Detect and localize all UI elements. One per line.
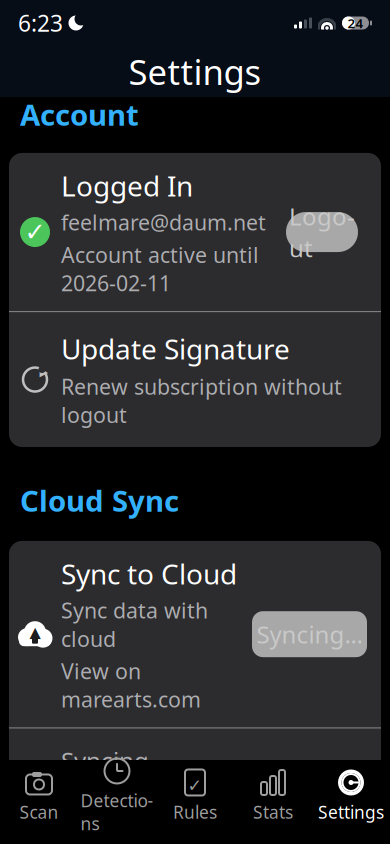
staticText: Syncing... (61, 744, 167, 776)
staticText: Settings (318, 800, 384, 823)
staticText: Sync data with cloud (61, 596, 208, 653)
staticText: Sync to Cloud (61, 555, 237, 592)
staticText: Renew subscription without logout (61, 372, 342, 429)
staticText: ▸ (39, 362, 48, 381)
button[interactable]: Detections (78, 769, 156, 823)
staticText: Logout (289, 200, 355, 264)
staticText: · (32, 776, 38, 806)
staticText: Scan (19, 800, 58, 823)
staticText: Account active until 2026-02-11 (61, 240, 259, 297)
button[interactable]: ▸ (9, 312, 381, 447)
staticText: Update Signature (61, 330, 290, 367)
staticText: Account (20, 95, 139, 134)
staticText: Stats (253, 800, 293, 823)
button[interactable]: Stats (234, 769, 312, 823)
staticText: 24 (347, 14, 363, 32)
staticText: Settings (128, 48, 261, 94)
staticText: ✓ (187, 776, 202, 795)
staticText: View on marearts.com (61, 657, 201, 713)
staticText: 6:23 (18, 8, 63, 38)
staticText: Cloud Sync (20, 481, 179, 520)
staticText: Detections (80, 789, 153, 835)
staticText: Rules (173, 800, 217, 823)
button[interactable]: ✓ (156, 769, 234, 823)
button[interactable]: Scan (0, 769, 78, 823)
button[interactable]: ▲ (9, 541, 381, 727)
staticText: Logged In (61, 167, 193, 204)
button[interactable]: Settings (312, 769, 390, 823)
staticText: Download (1/4): Downloading all rules fr… (61, 789, 359, 844)
staticText: ✓ (24, 218, 45, 246)
staticText: feelmare@daum.net (61, 208, 266, 236)
staticText: Syncing... (256, 618, 362, 650)
staticText: ▲ (29, 624, 40, 640)
button[interactable]: ✓ (9, 153, 381, 311)
